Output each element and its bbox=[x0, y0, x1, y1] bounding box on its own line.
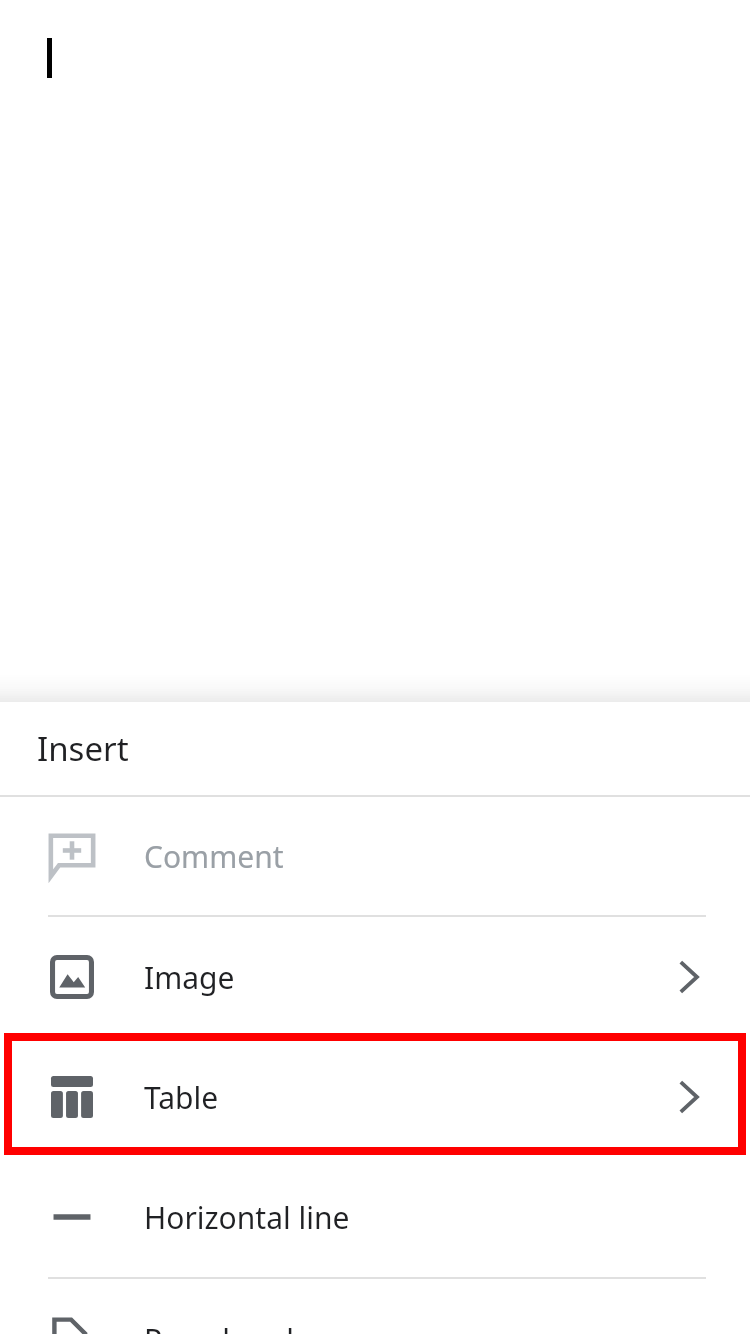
button[interactable]: Comment bbox=[0, 797, 750, 915]
button[interactable]: Horizontal line bbox=[0, 1157, 750, 1277]
button[interactable]: Image bbox=[0, 917, 750, 1037]
staticText: Horizontal line bbox=[144, 1197, 350, 1238]
button[interactable]: Page break bbox=[0, 1279, 750, 1334]
staticText: Comment bbox=[144, 836, 284, 877]
staticText: Table bbox=[144, 1077, 219, 1118]
staticText: Image bbox=[144, 957, 235, 998]
staticText: Insert bbox=[37, 726, 129, 771]
button[interactable]: Table bbox=[0, 1037, 750, 1157]
staticText: Page break bbox=[144, 1319, 303, 1334]
